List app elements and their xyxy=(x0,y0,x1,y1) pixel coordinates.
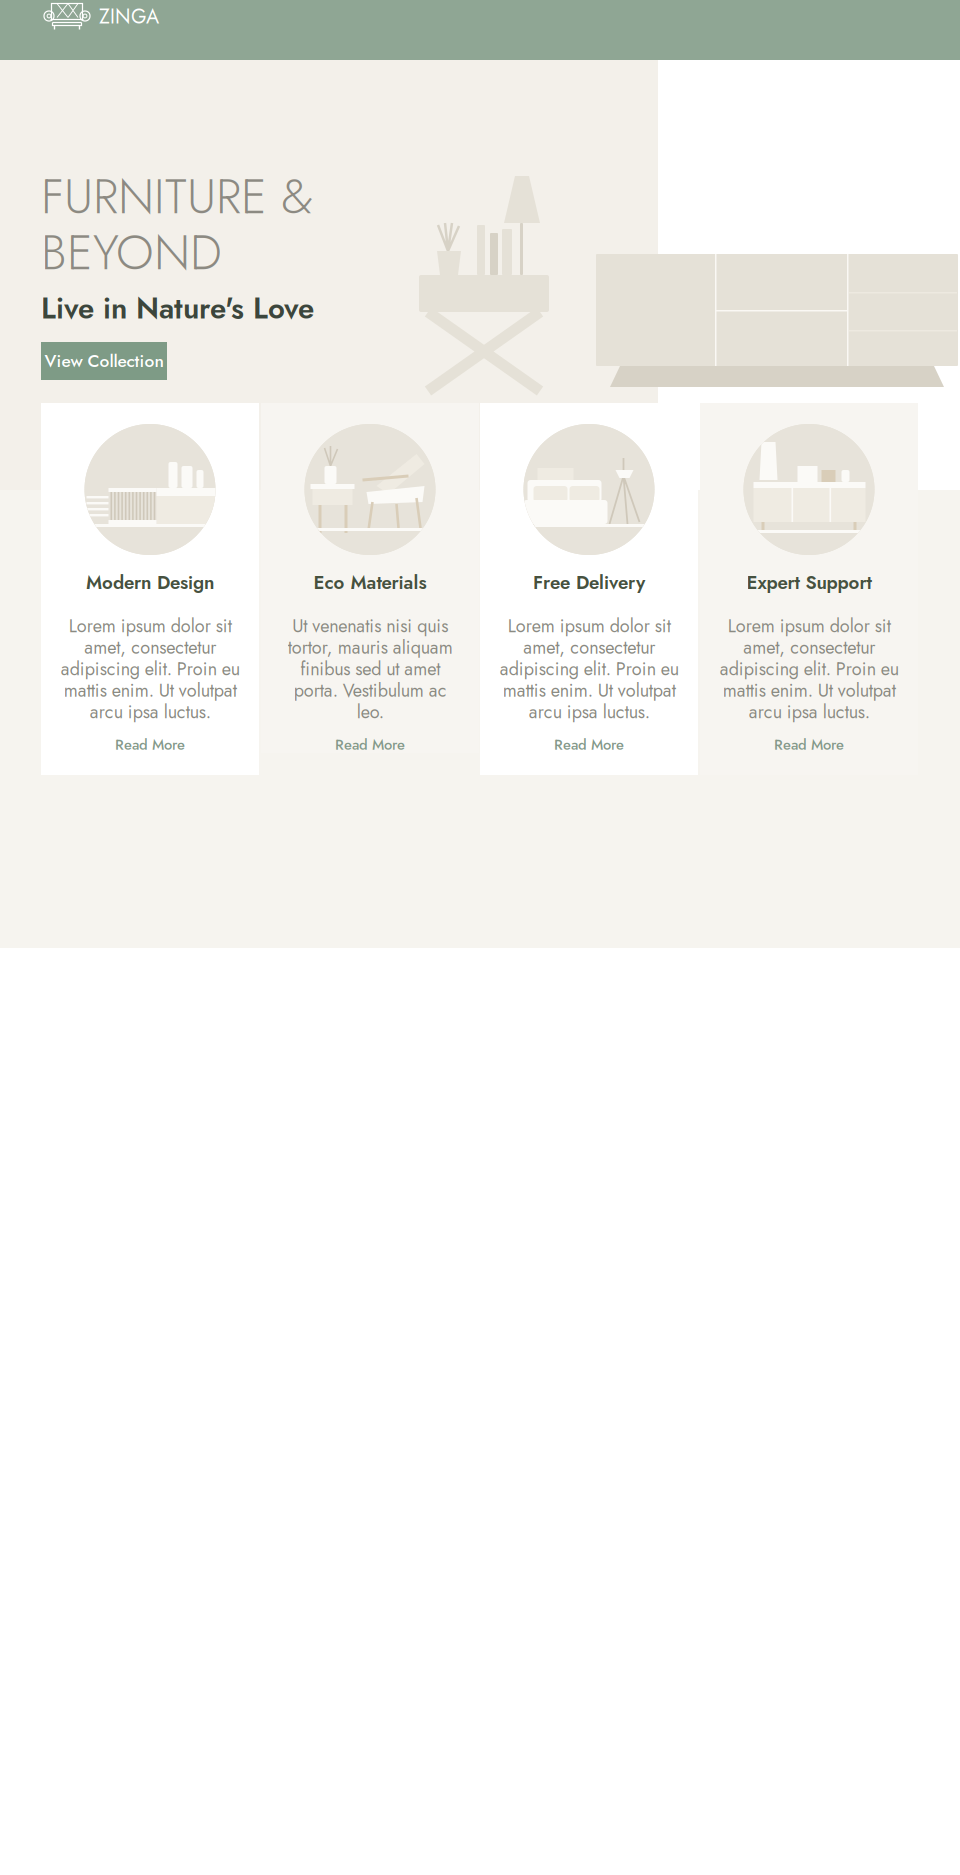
staticText: Read More xyxy=(335,734,405,755)
button[interactable]: Eco Materials xyxy=(261,403,479,753)
staticText: Lorem ipsum dolor sit amet, consectetur … xyxy=(499,613,678,725)
staticText: Ut venenatis nisi quis tortor, mauris al… xyxy=(287,613,452,725)
staticText: View Collection xyxy=(44,348,163,373)
staticText: Eco Materials xyxy=(313,569,426,596)
staticText: Lorem ipsum dolor sit amet, consectetur … xyxy=(60,613,239,725)
button[interactable]: Modern Design xyxy=(41,403,259,775)
staticText: Read More xyxy=(115,734,185,755)
staticText: Live in Nature's Love xyxy=(41,287,314,329)
button[interactable]: View Collection xyxy=(41,342,167,380)
button[interactable]: Free Delivery xyxy=(480,403,698,775)
staticText: Read More xyxy=(774,734,844,755)
staticText: BEYOND xyxy=(41,218,222,287)
button[interactable]: Expert Support xyxy=(700,403,918,775)
staticText: FURNITURE & xyxy=(41,162,313,231)
staticText: Lorem ipsum dolor sit amet, consectetur … xyxy=(719,613,898,725)
staticText: Modern Design xyxy=(86,569,214,596)
staticText: ZINGA xyxy=(99,2,159,31)
button[interactable]: ZINGA xyxy=(42,0,162,40)
staticText: Free Delivery xyxy=(533,569,645,596)
staticText: Expert Support xyxy=(746,569,871,596)
staticText: Read More xyxy=(554,734,624,755)
